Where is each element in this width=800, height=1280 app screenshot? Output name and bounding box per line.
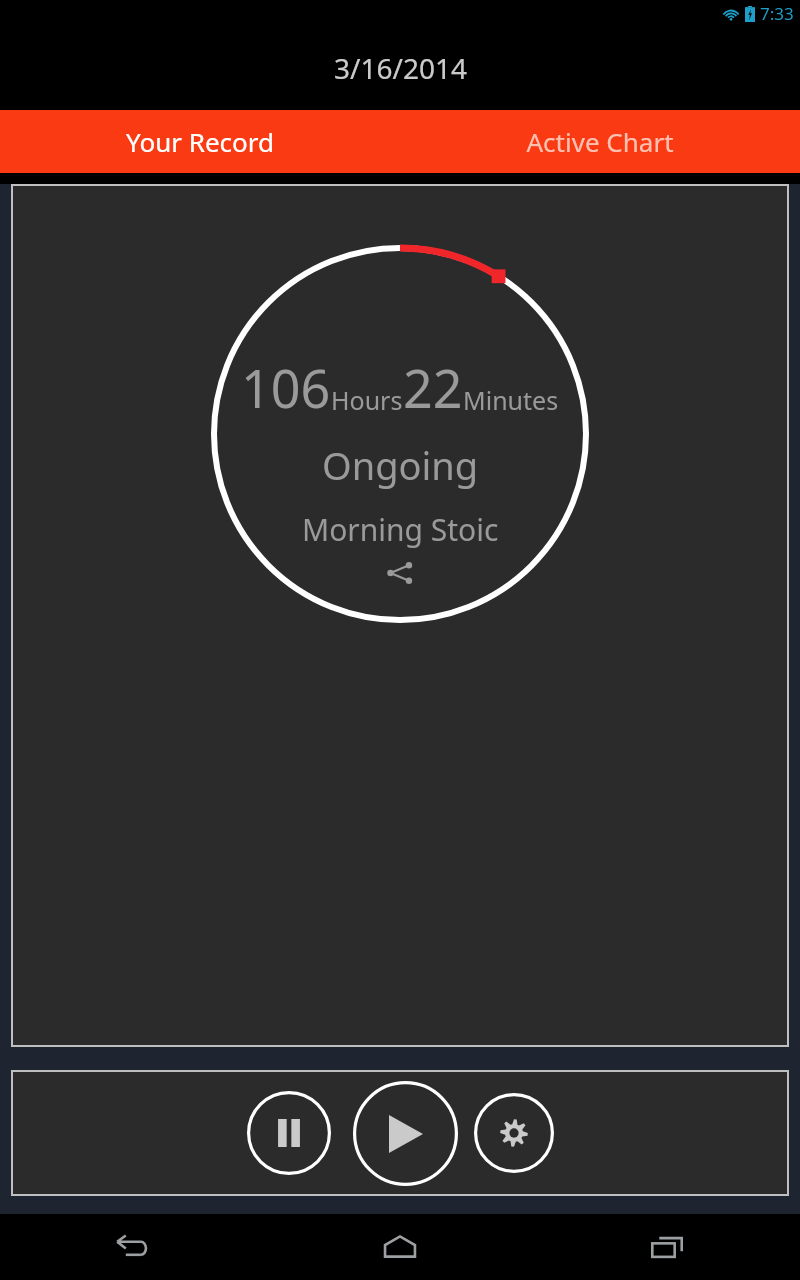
button[interactable]: Your Record (0, 110, 400, 173)
button[interactable]: Pause (247, 1091, 331, 1175)
button[interactable]: Active Chart (400, 110, 800, 173)
button[interactable]: Home (266, 1214, 533, 1280)
staticText: Your Record (126, 124, 274, 159)
staticText: 106 (241, 352, 331, 423)
staticText: Hours (331, 383, 403, 417)
button[interactable]: Settings (474, 1093, 554, 1173)
button[interactable]: Back (0, 1214, 266, 1280)
button[interactable]: Play (353, 1081, 458, 1186)
staticText: Active Chart (526, 124, 674, 159)
staticText: 3/16/2014 (334, 49, 467, 87)
staticText: Ongoing (322, 439, 479, 491)
staticText: Morning Stoic (302, 509, 499, 550)
staticText: 22 (403, 352, 463, 423)
staticText: Minutes (463, 383, 559, 417)
staticText: 7:33 (760, 2, 794, 25)
button[interactable]: Recent apps (533, 1214, 800, 1280)
button[interactable]: Share (381, 554, 419, 592)
